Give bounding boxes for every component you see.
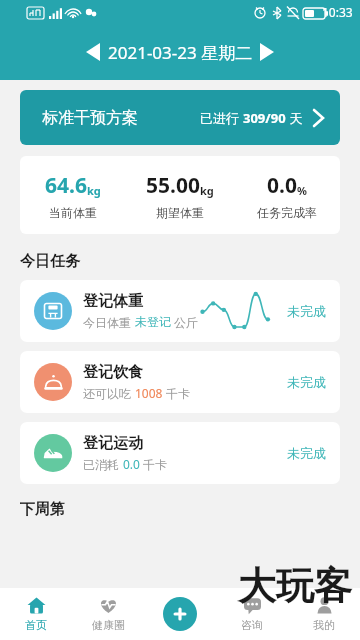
button[interactable]: 首页 bbox=[0, 588, 72, 640]
staticText: 标准干预方案 bbox=[42, 108, 138, 128]
staticText: 未完成 bbox=[287, 445, 326, 461]
button[interactable]: 64.6 bbox=[20, 171, 126, 220]
staticText: kg bbox=[87, 183, 101, 198]
staticText: 10:33 bbox=[322, 4, 353, 20]
staticText: 登记饮食 bbox=[83, 363, 143, 382]
staticText: 健康圈 bbox=[92, 618, 125, 632]
button[interactable]: Next day bbox=[260, 24, 360, 80]
staticText: 下周第 bbox=[20, 500, 65, 519]
button[interactable]: 健康圈 bbox=[72, 588, 144, 640]
staticText: 期望体重 bbox=[156, 205, 204, 220]
staticText: 我的 bbox=[313, 618, 335, 632]
button[interactable]: 登记运动 bbox=[20, 422, 340, 484]
staticText: 千卡 bbox=[163, 385, 191, 401]
staticText: 登记运动 bbox=[83, 434, 143, 453]
staticText: 0.0 bbox=[123, 456, 140, 472]
staticText: 公斤 bbox=[171, 314, 199, 330]
button[interactable]: Previous day bbox=[0, 24, 100, 80]
staticText: 已进行 bbox=[200, 109, 243, 127]
staticText: 大玩客 bbox=[238, 562, 352, 610]
staticText: 任务完成率 bbox=[257, 205, 317, 220]
staticText: 当前体重 bbox=[49, 205, 97, 220]
staticText: 64.6 bbox=[45, 171, 87, 200]
staticText: 55.00 bbox=[146, 171, 200, 200]
staticText: 今日体重 bbox=[83, 314, 135, 330]
staticText: 咨询 bbox=[241, 618, 263, 632]
button[interactable]: 登记体重 bbox=[20, 280, 340, 342]
staticText: 未登记 bbox=[135, 314, 171, 329]
button[interactable]: 登记饮食 bbox=[20, 351, 340, 413]
staticText: 1008 bbox=[135, 385, 163, 401]
button[interactable]: 0.0 bbox=[233, 171, 340, 220]
staticText: 已消耗 bbox=[83, 456, 123, 472]
button[interactable]: 标准干预方案 bbox=[20, 90, 340, 145]
staticText: 首页 bbox=[25, 618, 47, 632]
staticText: % bbox=[297, 183, 307, 198]
staticText: 今日任务 bbox=[20, 252, 80, 271]
button[interactable]: Add bbox=[144, 588, 216, 640]
staticText: 未完成 bbox=[287, 303, 326, 319]
button[interactable]: 咨询 bbox=[216, 588, 288, 640]
button[interactable]: 我的 bbox=[288, 588, 360, 640]
staticText: 登记体重 bbox=[83, 292, 143, 311]
button[interactable]: 55.00 bbox=[126, 171, 233, 220]
staticText: kg bbox=[200, 183, 214, 198]
staticText: 0.0 bbox=[267, 171, 297, 200]
staticText: 309/90 bbox=[243, 109, 286, 127]
staticText: 未完成 bbox=[287, 374, 326, 390]
staticText: 还可以吃 bbox=[83, 385, 135, 401]
staticText: 千卡 bbox=[140, 456, 168, 472]
staticText: 2021-03-23 星期二 bbox=[108, 41, 253, 64]
staticText: 天 bbox=[286, 109, 303, 127]
